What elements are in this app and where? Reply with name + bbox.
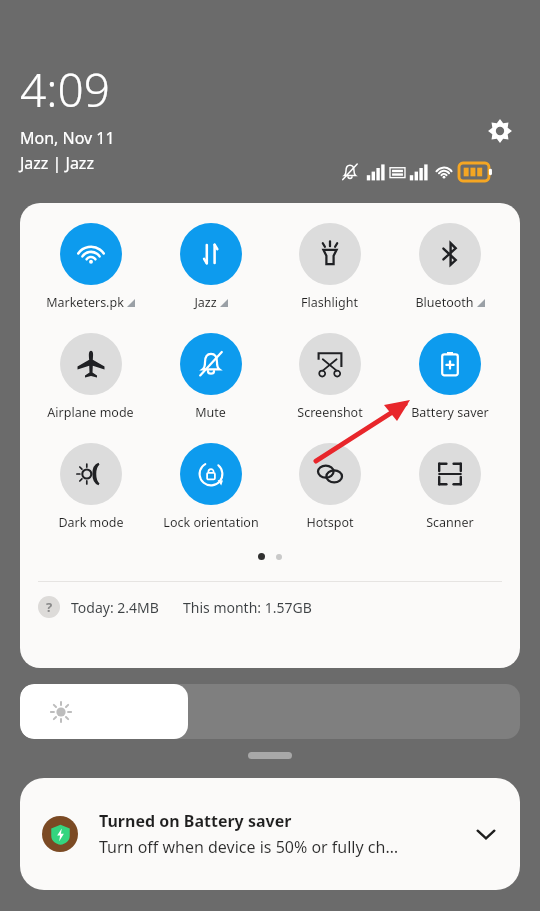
staticText: Airplane mode bbox=[47, 404, 134, 421]
button[interactable]: Hotspot bbox=[273, 441, 386, 533]
button[interactable]: Scanner bbox=[393, 441, 506, 533]
staticText: Turn off when device is 50% or fully ch… bbox=[99, 836, 399, 858]
staticText: Bluetooth bbox=[415, 294, 474, 311]
staticText: Battery saver bbox=[411, 404, 489, 421]
button[interactable]: Jazz bbox=[154, 221, 267, 313]
staticText: Lock orientation bbox=[163, 514, 259, 531]
button[interactable]: Expand notification bbox=[466, 814, 506, 854]
staticText: Scanner bbox=[426, 514, 474, 531]
button[interactable]: Settings bbox=[483, 114, 517, 148]
staticText: This month: 1.57GB bbox=[183, 598, 312, 617]
staticText: Mon, Nov 11 bbox=[20, 127, 115, 149]
staticText: Jazz bbox=[194, 294, 217, 311]
button[interactable]: Battery saver bbox=[393, 331, 506, 423]
button[interactable]: Airplane mode bbox=[34, 331, 147, 423]
staticText: Turned on Battery saver bbox=[99, 810, 292, 832]
button[interactable]: Bluetooth bbox=[393, 221, 506, 313]
button[interactable]: ? bbox=[38, 596, 60, 618]
button[interactable]: Dark mode bbox=[34, 441, 147, 533]
button[interactable]: Flashlight bbox=[273, 221, 386, 313]
button[interactable]: Lock orientation bbox=[154, 441, 267, 533]
staticText: Hotspot bbox=[306, 514, 354, 531]
button[interactable]: Brightness bbox=[20, 684, 520, 739]
staticText: Marketers.pk bbox=[46, 294, 124, 311]
staticText: Jazz | Jazz bbox=[20, 152, 94, 174]
button[interactable]: Mute bbox=[154, 331, 267, 423]
staticText: Dark mode bbox=[58, 514, 124, 531]
staticText: 4:09 bbox=[20, 58, 111, 121]
button[interactable]: Turned on Battery saver bbox=[20, 778, 520, 890]
staticText: Mute bbox=[195, 404, 226, 421]
staticText: Today: 2.4MB bbox=[71, 598, 159, 617]
staticText: Flashlight bbox=[301, 294, 358, 311]
staticText: Screenshot bbox=[297, 404, 363, 421]
button[interactable]: Screenshot bbox=[273, 331, 386, 423]
button[interactable]: Marketers.pk bbox=[34, 221, 147, 313]
staticText: ? bbox=[46, 598, 53, 616]
